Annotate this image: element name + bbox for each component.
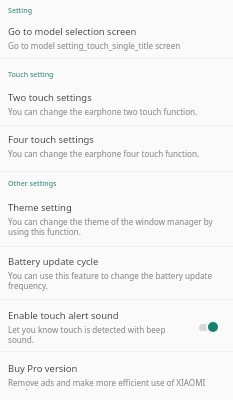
staticText: Go to model setting_touch_single_title s… [8, 40, 181, 51]
staticText: You can change the earphone four touch f… [8, 148, 200, 159]
staticText: Other settings [8, 178, 57, 188]
staticText: Two touch settings [8, 91, 92, 104]
button[interactable]: Buy Pro version [0, 352, 233, 400]
staticText: You can use this feature to change the b… [8, 270, 225, 291]
button[interactable]: Enable touch alert sound [0, 300, 233, 351]
button[interactable]: Four touch settings [0, 126, 233, 171]
staticText: Go to model selection screen [8, 25, 137, 38]
button[interactable]: Go to model selection screen [0, 15, 233, 58]
staticText: Battery update cycle [8, 255, 99, 268]
staticText: Theme setting [8, 201, 72, 214]
staticText: Enable touch alert sound [8, 309, 119, 322]
staticText: Four touch settings [8, 133, 94, 146]
staticText: Let you know touch is detected with beep… [8, 324, 191, 345]
button[interactable]: Two touch settings [0, 79, 233, 125]
staticText: Remove ads and make more efficient use o… [8, 377, 225, 390]
staticText: You can change the theme of the window m… [8, 216, 225, 237]
staticText: Buy Pro version [8, 362, 78, 375]
staticText: You can change the earphone two touch fu… [8, 106, 198, 117]
staticText: Setting [8, 5, 33, 15]
button[interactable]: Battery update cycle [0, 247, 233, 299]
button[interactable]: Theme setting [0, 188, 233, 246]
other: Enable touch alert sound toggle [199, 320, 218, 334]
staticText: Touch setting [8, 69, 54, 79]
